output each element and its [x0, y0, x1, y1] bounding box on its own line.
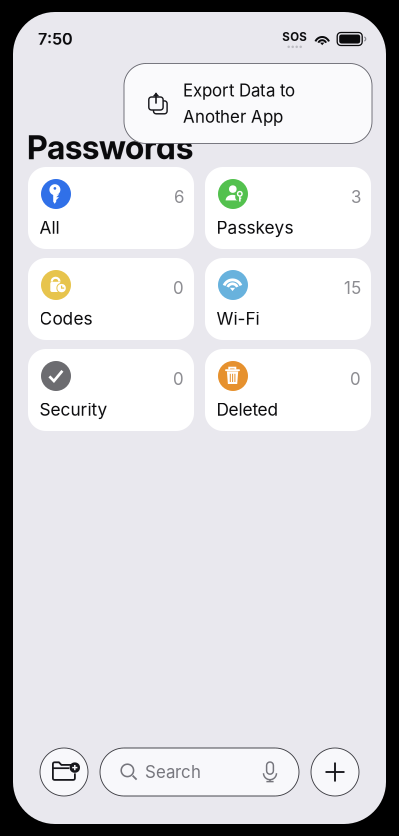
staticText: Codes	[39, 308, 92, 329]
staticText: 0	[350, 369, 361, 389]
button[interactable]: 3	[205, 167, 371, 249]
staticText: 3	[351, 187, 361, 207]
staticText: Export Data to	[183, 80, 295, 100]
staticText: Another App	[183, 106, 283, 127]
staticText: 7:50	[38, 29, 73, 49]
staticText: All	[39, 217, 59, 238]
staticText: 0	[173, 369, 184, 389]
button[interactable]: Search	[100, 748, 299, 796]
button[interactable]: 15	[205, 258, 371, 340]
staticText: 0	[173, 278, 184, 298]
staticText: 6	[174, 187, 184, 207]
staticText: Wi-Fi	[216, 308, 259, 329]
button[interactable]: New Folder	[40, 748, 88, 796]
staticText: Passkeys	[216, 217, 293, 238]
staticText: SOS	[282, 30, 307, 44]
staticText: Search	[145, 762, 201, 782]
button[interactable]: Add	[311, 748, 359, 796]
button[interactable]: Export Data to	[124, 63, 372, 143]
button[interactable]: 6	[28, 167, 194, 249]
staticText: 15	[344, 278, 361, 298]
staticText: Deleted	[216, 399, 278, 420]
button[interactable]: 0	[205, 349, 371, 431]
button[interactable]: 0	[28, 258, 194, 340]
button[interactable]: 0	[28, 349, 194, 431]
staticText: Security	[39, 399, 107, 420]
staticText: Passwords	[27, 128, 193, 167]
